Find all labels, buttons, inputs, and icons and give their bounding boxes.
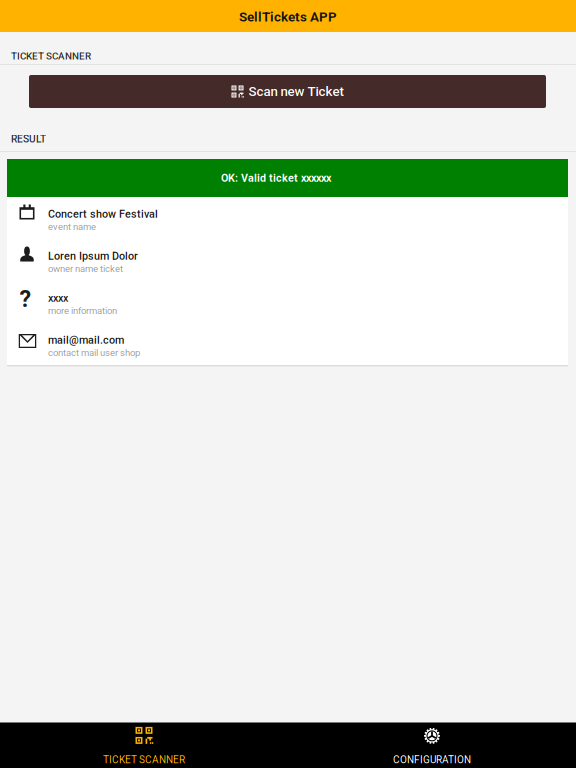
- staticText: TICKET SCANNER: [11, 50, 91, 62]
- staticText: RESULT: [11, 133, 46, 145]
- button[interactable]: Scan new Ticket: [29, 75, 546, 108]
- staticText: xxxx: [48, 292, 68, 304]
- staticText: CONFIGURATION: [393, 754, 471, 766]
- staticText: Loren Ipsum Dolor: [48, 250, 138, 262]
- staticText: mail@mail.com: [48, 334, 124, 346]
- staticText: SellTickets APP: [239, 9, 337, 25]
- staticText: TICKET SCANNER: [103, 754, 185, 766]
- staticText: ?: [19, 285, 31, 313]
- staticText: more information: [48, 305, 117, 316]
- staticText: Scan new Ticket: [248, 84, 343, 99]
- button[interactable]: TICKET SCANNER: [0, 722, 288, 768]
- staticText: Concert show Festival: [48, 208, 158, 220]
- staticText: contact mail user shop: [48, 347, 140, 358]
- staticText: event name: [48, 221, 96, 232]
- staticText: OK: Valid ticket xxxxxx: [221, 172, 331, 184]
- button[interactable]: CONFIGURATION: [288, 722, 576, 768]
- staticText: owner name ticket: [48, 263, 123, 274]
